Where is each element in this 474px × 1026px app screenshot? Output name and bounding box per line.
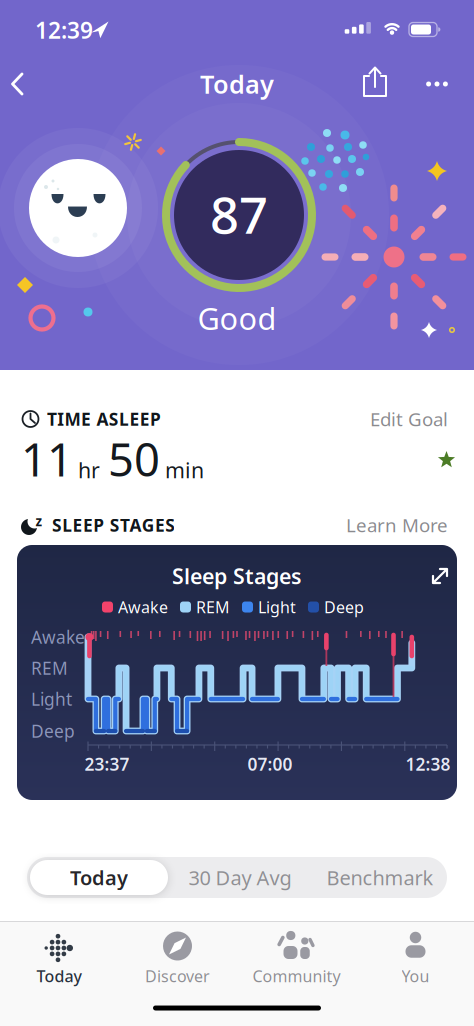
button[interactable]: 30 Day Avg [170,857,310,898]
staticText: Deep [324,596,364,618]
button[interactable]: Edit Goal [370,407,448,431]
staticText: 07:00 [247,752,292,775]
staticText: 23:37 [84,752,129,775]
staticText: Light [31,687,72,710]
staticText: Community [252,965,340,987]
button[interactable]: Today [29,857,169,898]
button[interactable]: Learn More [346,513,448,537]
button[interactable]: Community [237,921,355,997]
staticText: Discover [145,965,210,987]
staticText: Light [258,596,296,618]
staticText: 12:38 [405,752,450,775]
button[interactable] [355,63,395,103]
button[interactable]: Discover [118,921,236,997]
staticText: Awake [31,625,85,648]
staticText: Edit Goal [370,407,448,431]
staticText: REM [196,596,230,618]
button[interactable]: Benchmark [310,857,450,898]
staticText: Sleep Stages [172,562,302,590]
staticText: 11 [21,429,73,489]
button[interactable] [425,561,455,591]
staticText: SLEEP STAGES [52,513,175,536]
staticText: 87 [210,180,268,248]
staticText: Learn More [346,513,448,537]
staticText: TIME ASLEEP [47,407,161,430]
button[interactable]: Today [0,921,118,997]
staticText: Today [36,965,81,987]
staticText: z [35,512,42,530]
staticText: 12:39 [35,15,93,45]
staticText: 30 Day Avg [188,864,291,891]
staticText: You [401,965,429,987]
staticText: hr [78,456,100,484]
staticText: Today [200,67,274,101]
staticText: Today [70,864,128,891]
staticText: Awake [118,596,168,618]
staticText: Benchmark [326,864,433,891]
button[interactable] [10,69,40,99]
staticText: Good [197,298,276,338]
staticText: Deep [31,719,75,742]
button[interactable]: You [356,921,474,997]
staticText: min [165,456,204,484]
staticText: 50 [108,429,160,489]
staticText: REM [31,656,68,679]
button[interactable] [417,64,457,104]
